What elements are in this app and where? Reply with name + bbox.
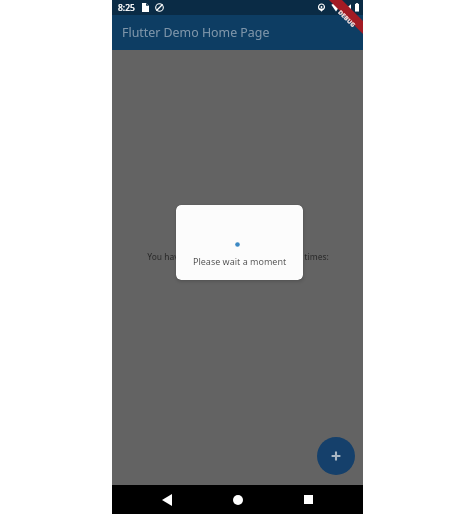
button[interactable]: Back <box>151 485 183 514</box>
staticText: DEBUG <box>336 8 358 30</box>
staticText: You have pushed the button this many tim… <box>147 251 329 262</box>
button[interactable]: Home <box>222 485 254 514</box>
button[interactable]: Increment <box>317 437 355 475</box>
staticText: 0 <box>233 262 243 285</box>
staticText: 8:25 <box>118 2 135 14</box>
button[interactable]: Recent apps <box>292 485 324 514</box>
staticText: Flutter Demo Home Page <box>122 24 270 41</box>
staticText: Please wait a moment <box>193 255 287 267</box>
